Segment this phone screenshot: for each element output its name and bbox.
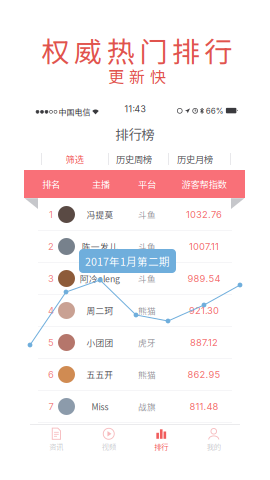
staticText: 斗鱼: [138, 208, 156, 221]
staticText: 冯提莫: [86, 208, 113, 221]
staticText: 中国电信: [58, 106, 90, 118]
staticText: 权威热门排行: [41, 30, 232, 70]
staticText: 6: [48, 369, 54, 380]
staticText: 排行榜: [115, 124, 154, 144]
staticText: 862.95: [187, 369, 220, 380]
staticText: 4: [48, 305, 54, 316]
button[interactable]: 历史月榜: [164, 148, 226, 170]
staticText: 1032.76: [186, 209, 222, 220]
staticText: 排行: [154, 441, 168, 452]
staticText: 周二珂: [86, 304, 113, 317]
staticText: 1: [49, 209, 53, 220]
staticText: 陈一发儿: [82, 240, 118, 253]
staticText: 筛选: [65, 152, 83, 166]
staticText: 熊猫: [138, 304, 156, 317]
button[interactable]: 历史周榜: [104, 148, 164, 170]
button[interactable]: 3: [30, 263, 240, 295]
button[interactable]: 1: [30, 199, 240, 231]
staticText: 66%: [206, 106, 224, 116]
button[interactable]: 7: [30, 391, 240, 423]
staticText: 熊猫: [138, 368, 156, 381]
staticText: 2017年1月第二期: [85, 253, 170, 269]
staticText: 主播: [92, 177, 110, 191]
staticText: 视频: [102, 441, 116, 452]
button[interactable]: 5: [30, 327, 240, 359]
staticText: 7: [48, 401, 53, 412]
staticText: Miss: [91, 400, 108, 413]
staticText: 历史周榜: [116, 152, 152, 166]
button[interactable]: 资讯: [30, 425, 82, 455]
staticText: 平台: [138, 177, 156, 191]
staticText: 1007.11: [189, 241, 219, 252]
staticText: 2: [48, 241, 54, 252]
staticText: 游客帮指数: [181, 177, 226, 191]
button[interactable]: 6: [30, 359, 240, 391]
button[interactable]: 筛选: [41, 148, 108, 170]
button[interactable]: 4: [30, 295, 240, 327]
staticText: 阿冷aleng: [80, 272, 120, 285]
staticText: 11:43: [124, 104, 145, 114]
staticText: 更新快: [108, 64, 166, 88]
staticText: 斗鱼: [138, 272, 156, 285]
staticText: 小团团: [86, 336, 113, 349]
staticText: 5: [48, 337, 54, 348]
staticText: 811.48: [189, 401, 218, 412]
staticText: 排名: [42, 177, 60, 191]
button[interactable]: 我的: [187, 425, 240, 455]
staticText: 3: [48, 273, 54, 284]
button[interactable]: 2: [30, 231, 240, 263]
staticText: 989.54: [187, 273, 220, 284]
staticText: 887.12: [190, 337, 218, 348]
staticText: 斗鱼: [138, 240, 156, 253]
staticText: 虎牙: [138, 336, 156, 349]
button[interactable]: 排行: [135, 425, 187, 455]
staticText: 历史月榜: [177, 152, 213, 166]
staticText: 战旗: [138, 400, 156, 413]
button[interactable]: 视频: [82, 425, 135, 455]
staticText: 我的: [207, 441, 221, 452]
staticText: 五五开: [86, 368, 113, 381]
staticText: 921.30: [189, 305, 219, 316]
staticText: 资讯: [49, 441, 63, 452]
